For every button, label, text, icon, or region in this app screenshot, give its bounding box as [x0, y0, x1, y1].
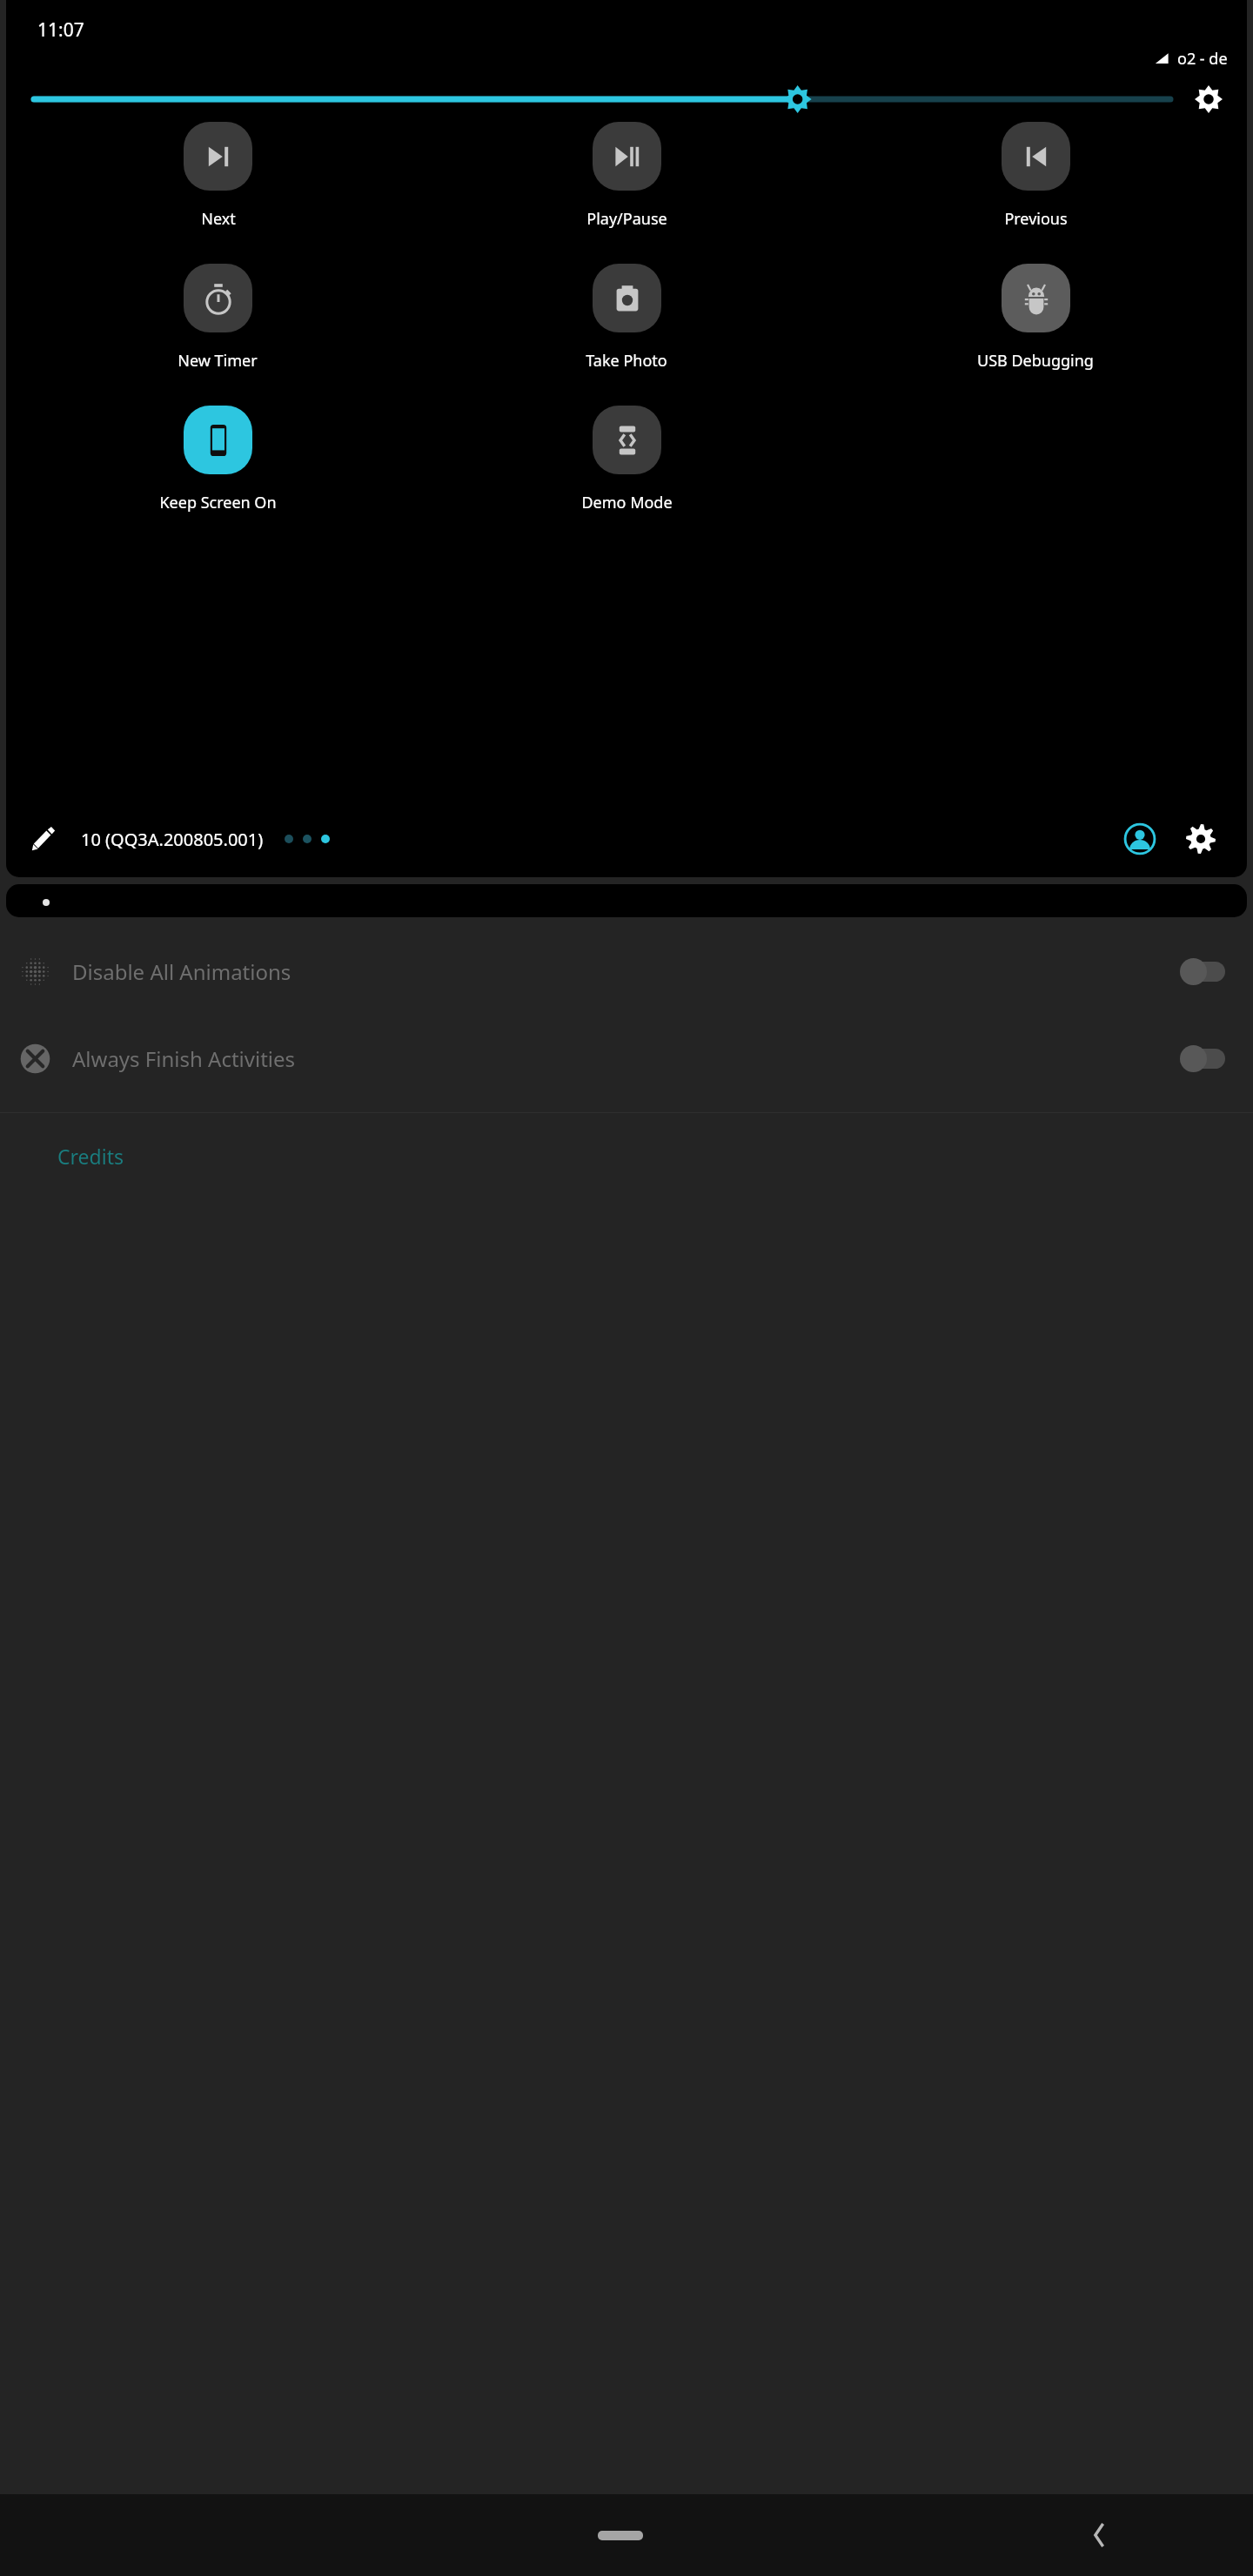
button[interactable]: Disable All Animations — [0, 928, 1253, 1015]
staticText: Previous — [1004, 208, 1068, 230]
button[interactable]: Previous — [1002, 122, 1070, 230]
button[interactable]: User — [1115, 814, 1165, 864]
staticText: 11:07 — [37, 17, 84, 43]
button[interactable]: New Timer — [178, 264, 258, 372]
button[interactable]: Keep Screen On — [159, 406, 277, 513]
staticText: Credits — [57, 1143, 124, 1170]
button[interactable]: Play/Pause — [586, 122, 667, 230]
staticText: Next — [201, 208, 236, 230]
button[interactable]: Demo Mode — [581, 406, 673, 513]
button[interactable]: Back — [1069, 2504, 1131, 2566]
button[interactable]: Edit tiles — [20, 815, 67, 862]
staticText: Always Finish Activities — [72, 1044, 296, 1073]
button[interactable]: Next — [184, 122, 252, 230]
button[interactable]: Settings — [1176, 814, 1226, 864]
staticText: Demo Mode — [581, 492, 673, 513]
staticText: o2 - de — [1177, 48, 1228, 70]
button[interactable]: Take Photo — [586, 264, 667, 372]
button[interactable]: Home — [573, 2508, 668, 2562]
staticText: Take Photo — [586, 350, 667, 372]
staticText: USB Debugging — [977, 350, 1094, 372]
staticText: 10 (QQ3A.200805.001) — [81, 828, 264, 851]
button[interactable]: Brightness — [34, 82, 1170, 117]
staticText: Play/Pause — [586, 208, 667, 230]
staticText: Keep Screen On — [159, 492, 277, 513]
button[interactable]: USB Debugging — [977, 264, 1094, 372]
button[interactable]: Auto brightness — [1189, 80, 1228, 118]
button[interactable]: Always Finish Activities — [0, 1015, 1253, 1102]
button[interactable]: Credits — [0, 1113, 1253, 1198]
staticText: Disable All Animations — [72, 957, 291, 986]
staticText: New Timer — [178, 350, 258, 372]
